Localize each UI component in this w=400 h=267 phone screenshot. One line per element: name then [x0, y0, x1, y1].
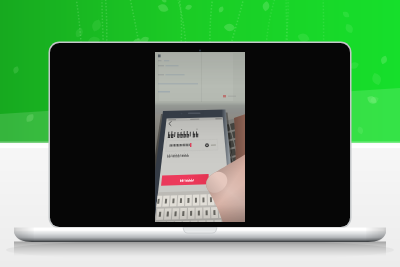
button[interactable]: Tutorial video preview on laptop — [0, 0, 400, 267]
